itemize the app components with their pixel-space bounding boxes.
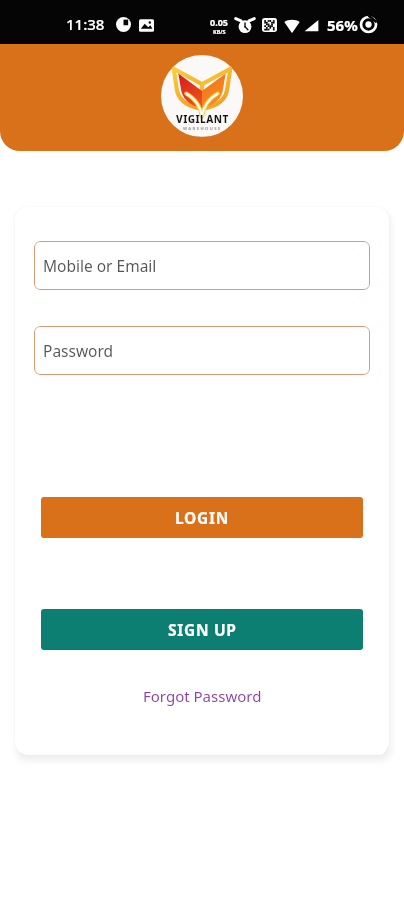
staticText: KB/S: [213, 28, 226, 35]
staticText: SIGN UP: [168, 619, 237, 640]
button[interactable]: Forgot Password: [15, 686, 389, 706]
staticText: LOGIN: [175, 507, 229, 528]
staticText: Password: [43, 340, 114, 361]
staticText: WAREHOUSE: [183, 126, 222, 132]
button[interactable]: SIGN UP: [41, 609, 363, 650]
staticText: Mobile or Email: [43, 255, 157, 276]
staticText: Forgot Password: [143, 686, 262, 706]
staticText: VIGILANT: [176, 112, 229, 126]
staticText: 0.05: [210, 16, 228, 28]
button[interactable]: LOGIN: [41, 497, 363, 538]
staticText: Take your supplies: [187, 134, 219, 137]
button[interactable]: Password: [34, 326, 370, 375]
staticText: 56%: [327, 15, 358, 35]
button[interactable]: Mobile or Email: [34, 241, 370, 290]
staticText: 11:38: [66, 14, 105, 34]
